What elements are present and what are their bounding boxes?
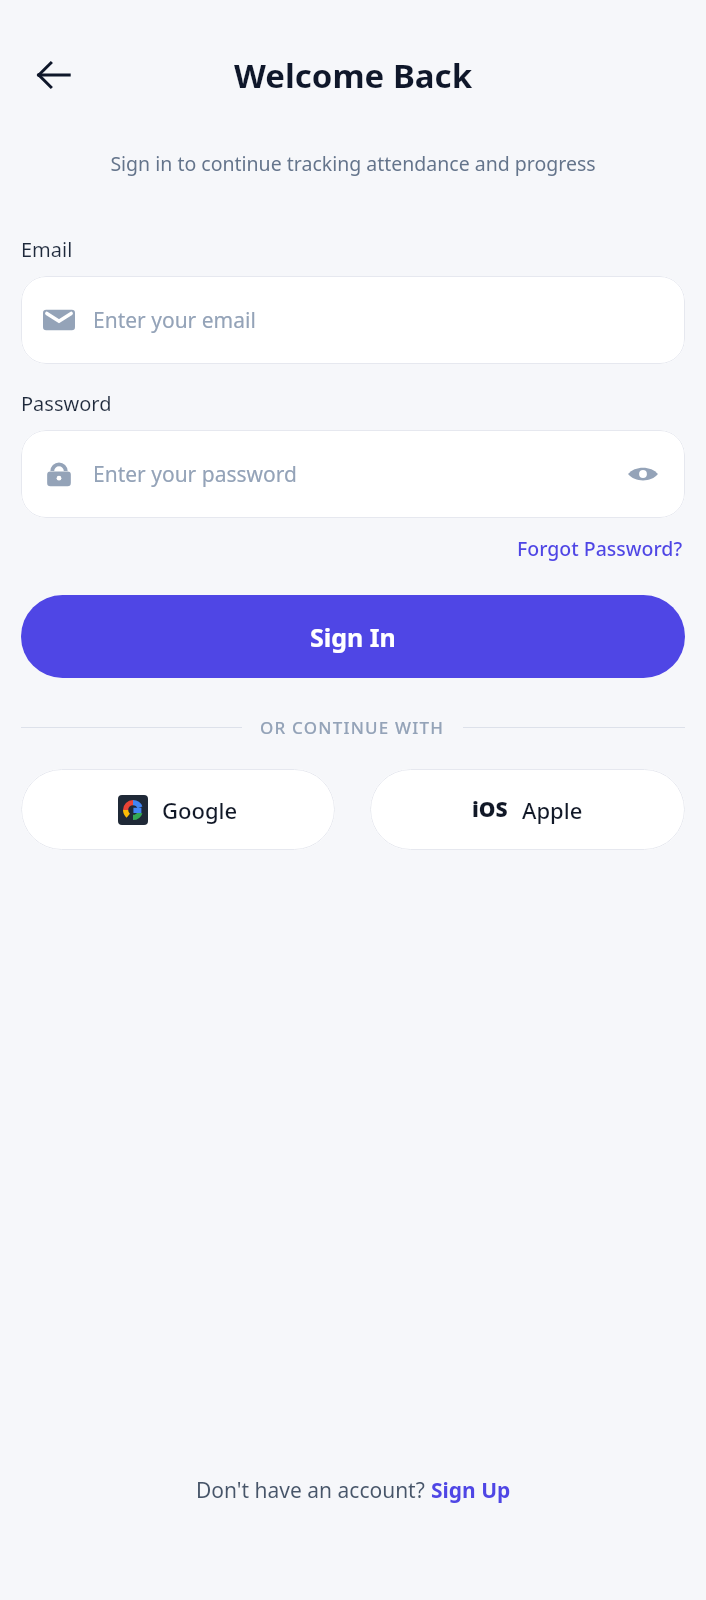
button[interactable]: iOS (370, 769, 685, 850)
staticText: Enter your email (93, 306, 663, 335)
button[interactable]: Google (21, 769, 335, 850)
staticText: Don't have an account? (196, 1476, 431, 1505)
staticText: Welcome Back (234, 53, 473, 98)
staticText: Sign in to continue tracking attendance … (46, 150, 660, 177)
staticText: Google (162, 795, 238, 825)
staticText: Forgot Password? (517, 535, 683, 562)
button[interactable]: Don't have an account? (0, 1466, 706, 1600)
staticText: Sign In (310, 620, 396, 654)
staticText: Enter your password (93, 460, 623, 489)
staticText: Sign Up (431, 1476, 511, 1505)
button[interactable]: Back (30, 51, 78, 99)
button[interactable]: Show password (623, 454, 663, 494)
staticText: Apple (522, 795, 583, 825)
button[interactable]: Enter your password (21, 430, 685, 518)
staticText: Email (21, 236, 73, 263)
button[interactable]: Enter your email (21, 276, 685, 364)
button[interactable]: Forgot Password? (515, 533, 685, 564)
staticText: iOS (472, 795, 508, 824)
staticText: Password (21, 390, 112, 417)
staticText: OR CONTINUE WITH (260, 716, 445, 739)
button[interactable]: Sign In (21, 595, 685, 678)
